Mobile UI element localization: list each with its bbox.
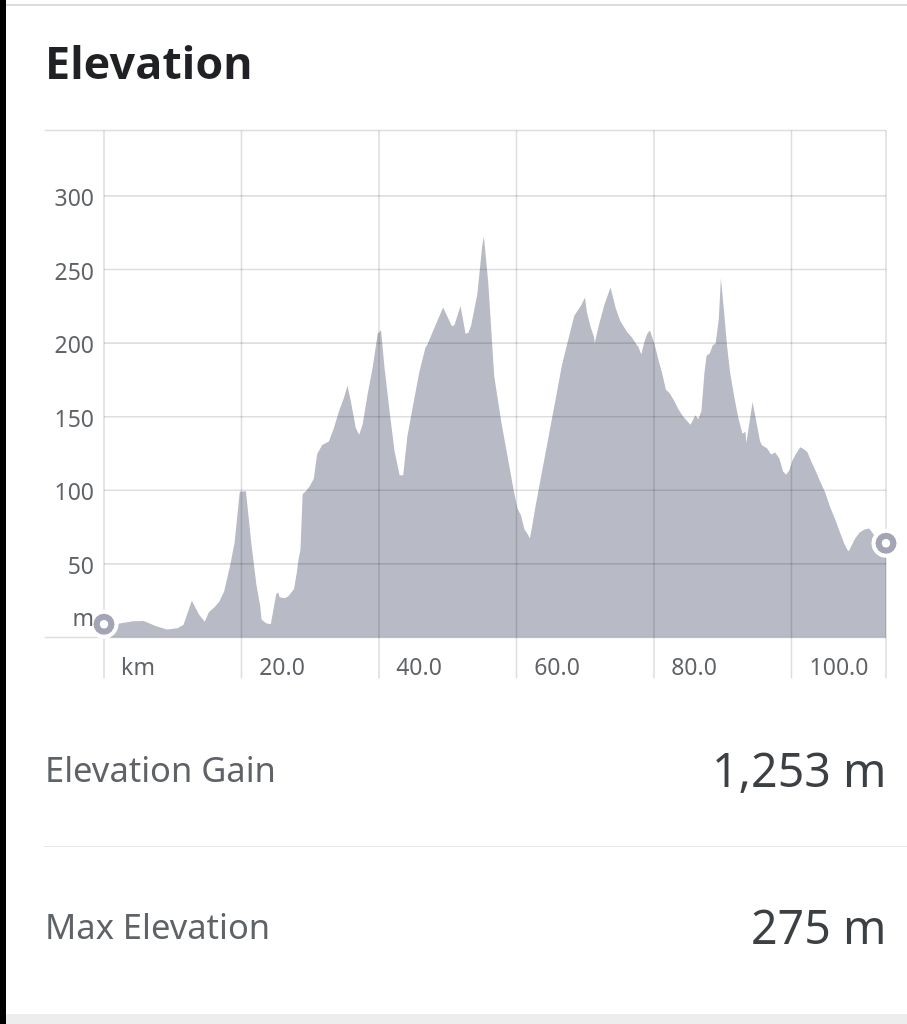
staticText: 50: [0, 549, 94, 580]
staticText: 300: [0, 181, 94, 212]
staticText: Max Elevation: [45, 902, 271, 949]
button[interactable]: Elevation Gain: [0, 690, 907, 846]
staticText: m: [0, 601, 94, 632]
staticText: 200: [0, 328, 94, 359]
other: Elevation profile chart: [0, 0, 907, 1024]
staticText: 40.0: [359, 650, 479, 681]
button[interactable]: Max Elevation: [0, 847, 907, 1003]
staticText: 100.0: [779, 650, 899, 681]
staticText: Elevation Gain: [45, 745, 276, 792]
staticText: 250: [0, 255, 94, 286]
staticText: 1,253 m: [712, 737, 887, 800]
staticText: 275 m: [751, 894, 887, 957]
staticText: 20.0: [222, 650, 342, 681]
staticText: 60.0: [497, 650, 617, 681]
staticText: 100: [0, 475, 94, 506]
staticText: km: [78, 650, 198, 681]
staticText: 80.0: [634, 650, 754, 681]
staticText: 150: [0, 402, 94, 433]
staticText: Elevation: [45, 31, 253, 92]
